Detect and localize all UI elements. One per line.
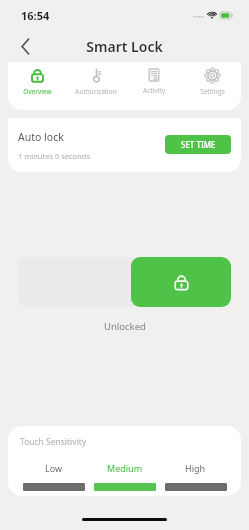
staticText: Unlocked (104, 320, 146, 333)
staticText: Medium (107, 462, 143, 474)
button[interactable]: Low (18, 462, 89, 491)
button[interactable]: Authorization (67, 62, 125, 110)
staticText: Smart Lock (86, 37, 163, 56)
staticText: 16:54 (21, 8, 50, 23)
button[interactable]: Slide to lock (18, 257, 231, 307)
staticText: Settings (200, 87, 225, 96)
staticText: 1 minutes 0 seconds (18, 151, 90, 161)
staticText: Low (45, 462, 63, 474)
button[interactable]: Overview (8, 62, 67, 110)
staticText: Authorization (75, 87, 117, 96)
button[interactable]: Medium (89, 462, 160, 491)
staticText: Auto lock (18, 130, 64, 144)
staticText: High (185, 462, 206, 474)
button[interactable]: High (160, 462, 231, 491)
staticText: Overview (23, 87, 52, 96)
staticText: Touch Sensitivity (20, 436, 87, 448)
staticText: Activity (143, 86, 165, 95)
button[interactable]: Activity (125, 62, 183, 110)
button[interactable]: Settings (183, 62, 241, 110)
button[interactable]: SET TIME (165, 135, 231, 154)
button[interactable]: Auto lock (8, 118, 241, 172)
button[interactable]: Back (12, 33, 38, 59)
staticText: SET TIME (181, 139, 216, 150)
